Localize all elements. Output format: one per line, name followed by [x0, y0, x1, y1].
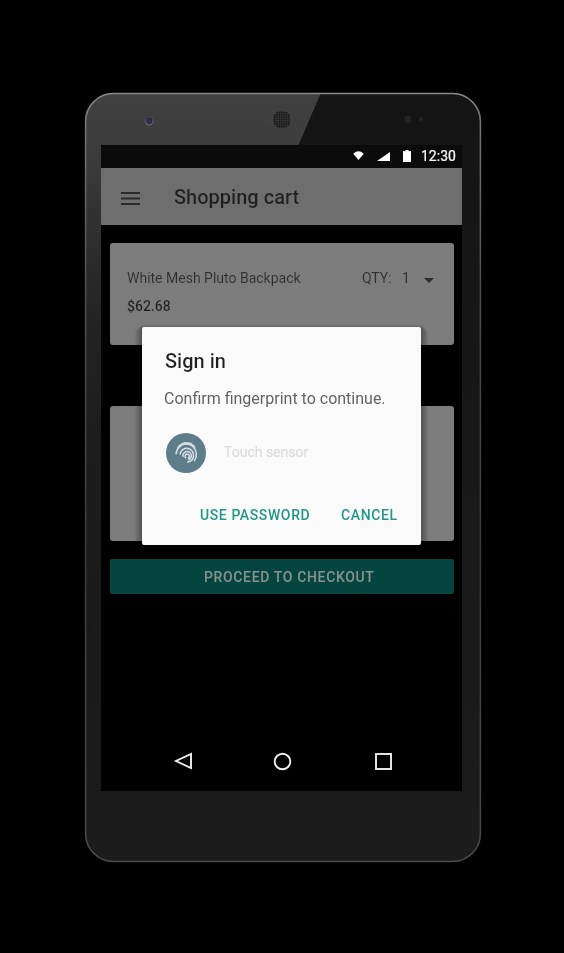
button[interactable]: PROCEED TO CHECKOUT — [110, 559, 454, 594]
staticText: $62.68 — [127, 298, 171, 314]
button[interactable]: Back — [159, 737, 207, 785]
staticText: QTY: — [362, 270, 392, 286]
button[interactable]: Home — [258, 737, 306, 785]
staticText: Touch sensor — [224, 444, 309, 460]
button[interactable]: Recent apps — [359, 737, 407, 785]
staticText: Sign in — [165, 349, 226, 372]
button[interactable]: Cart item — [110, 406, 454, 541]
button[interactable]: White Mesh Pluto Backpack — [110, 243, 454, 345]
button[interactable]: Change quantity — [417, 270, 441, 290]
staticText: 12:30 — [421, 148, 456, 164]
button[interactable]: USE PASSWORD — [198, 503, 312, 527]
staticText: White Mesh Pluto Backpack — [127, 270, 301, 286]
staticText: USE PASSWORD — [200, 507, 311, 523]
staticText: Confirm fingerprint to continue. — [164, 389, 386, 408]
button[interactable]: Open navigation menu — [110, 178, 150, 218]
staticText: Shopping cart — [174, 185, 300, 208]
staticText: PROCEED TO CHECKOUT — [204, 569, 375, 585]
staticText: CANCEL — [341, 507, 398, 523]
staticText: 1 — [402, 270, 410, 286]
button[interactable]: CANCEL — [339, 503, 399, 527]
